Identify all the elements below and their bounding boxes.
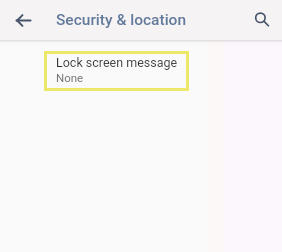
button[interactable]: Navigate up [8,5,38,35]
button[interactable]: Lock screen message [44,51,189,91]
staticText: None [56,71,84,84]
staticText: Lock screen message [56,55,178,70]
button[interactable]: Search [247,5,277,35]
staticText: Security & location [56,11,187,29]
